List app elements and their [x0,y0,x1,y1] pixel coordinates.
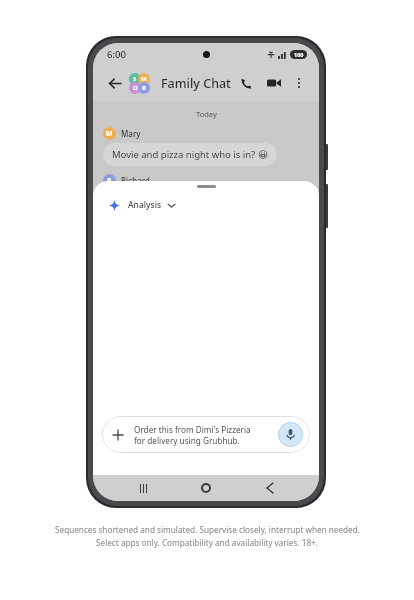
button[interactable]: Voice call [235,72,257,94]
button[interactable]: Analysis [105,196,179,214]
button[interactable]: Add attachment [102,416,310,453]
button[interactable]: Back [256,475,284,501]
staticText: One large pepperoni pizza! 🙏 🍕 [112,195,261,208]
staticText: Richard [121,175,150,186]
button[interactable]: Home [192,475,220,501]
button[interactable]: Recent apps [129,475,157,501]
staticText: Today [196,109,217,119]
staticText: Family Chat [161,75,231,92]
staticText: Sequences shortened and simulated. Super… [55,524,360,535]
staticText: Mary [121,128,141,139]
staticText: Analysis [128,199,162,211]
button[interactable]: Back [103,72,125,94]
staticText: 6:00 [107,48,126,61]
staticText: Select apps only. Compatibility and avai… [96,537,318,548]
staticText: Order this from Dimi's Pizzeria [134,424,251,435]
staticText: M [141,75,147,83]
staticText: 100 [294,51,304,58]
button[interactable]: More options [289,73,309,93]
button[interactable]: Voice input [278,422,303,447]
button[interactable]: Video call [263,72,285,94]
staticText: R [107,176,112,186]
button[interactable]: Add attachment [109,426,127,444]
button[interactable]: One large pepperoni pizza! 🙏 🍕 [103,190,270,213]
button[interactable]: Movie and pizza night who is in? 😀 [103,143,277,166]
staticText: S [133,75,137,83]
staticText: R [142,84,146,92]
staticText: Movie and pizza night who is in? 😀 [112,148,268,161]
staticText: for delivery using Grubhub. [134,435,240,446]
staticText: M [106,129,113,139]
staticText: O [133,84,138,92]
